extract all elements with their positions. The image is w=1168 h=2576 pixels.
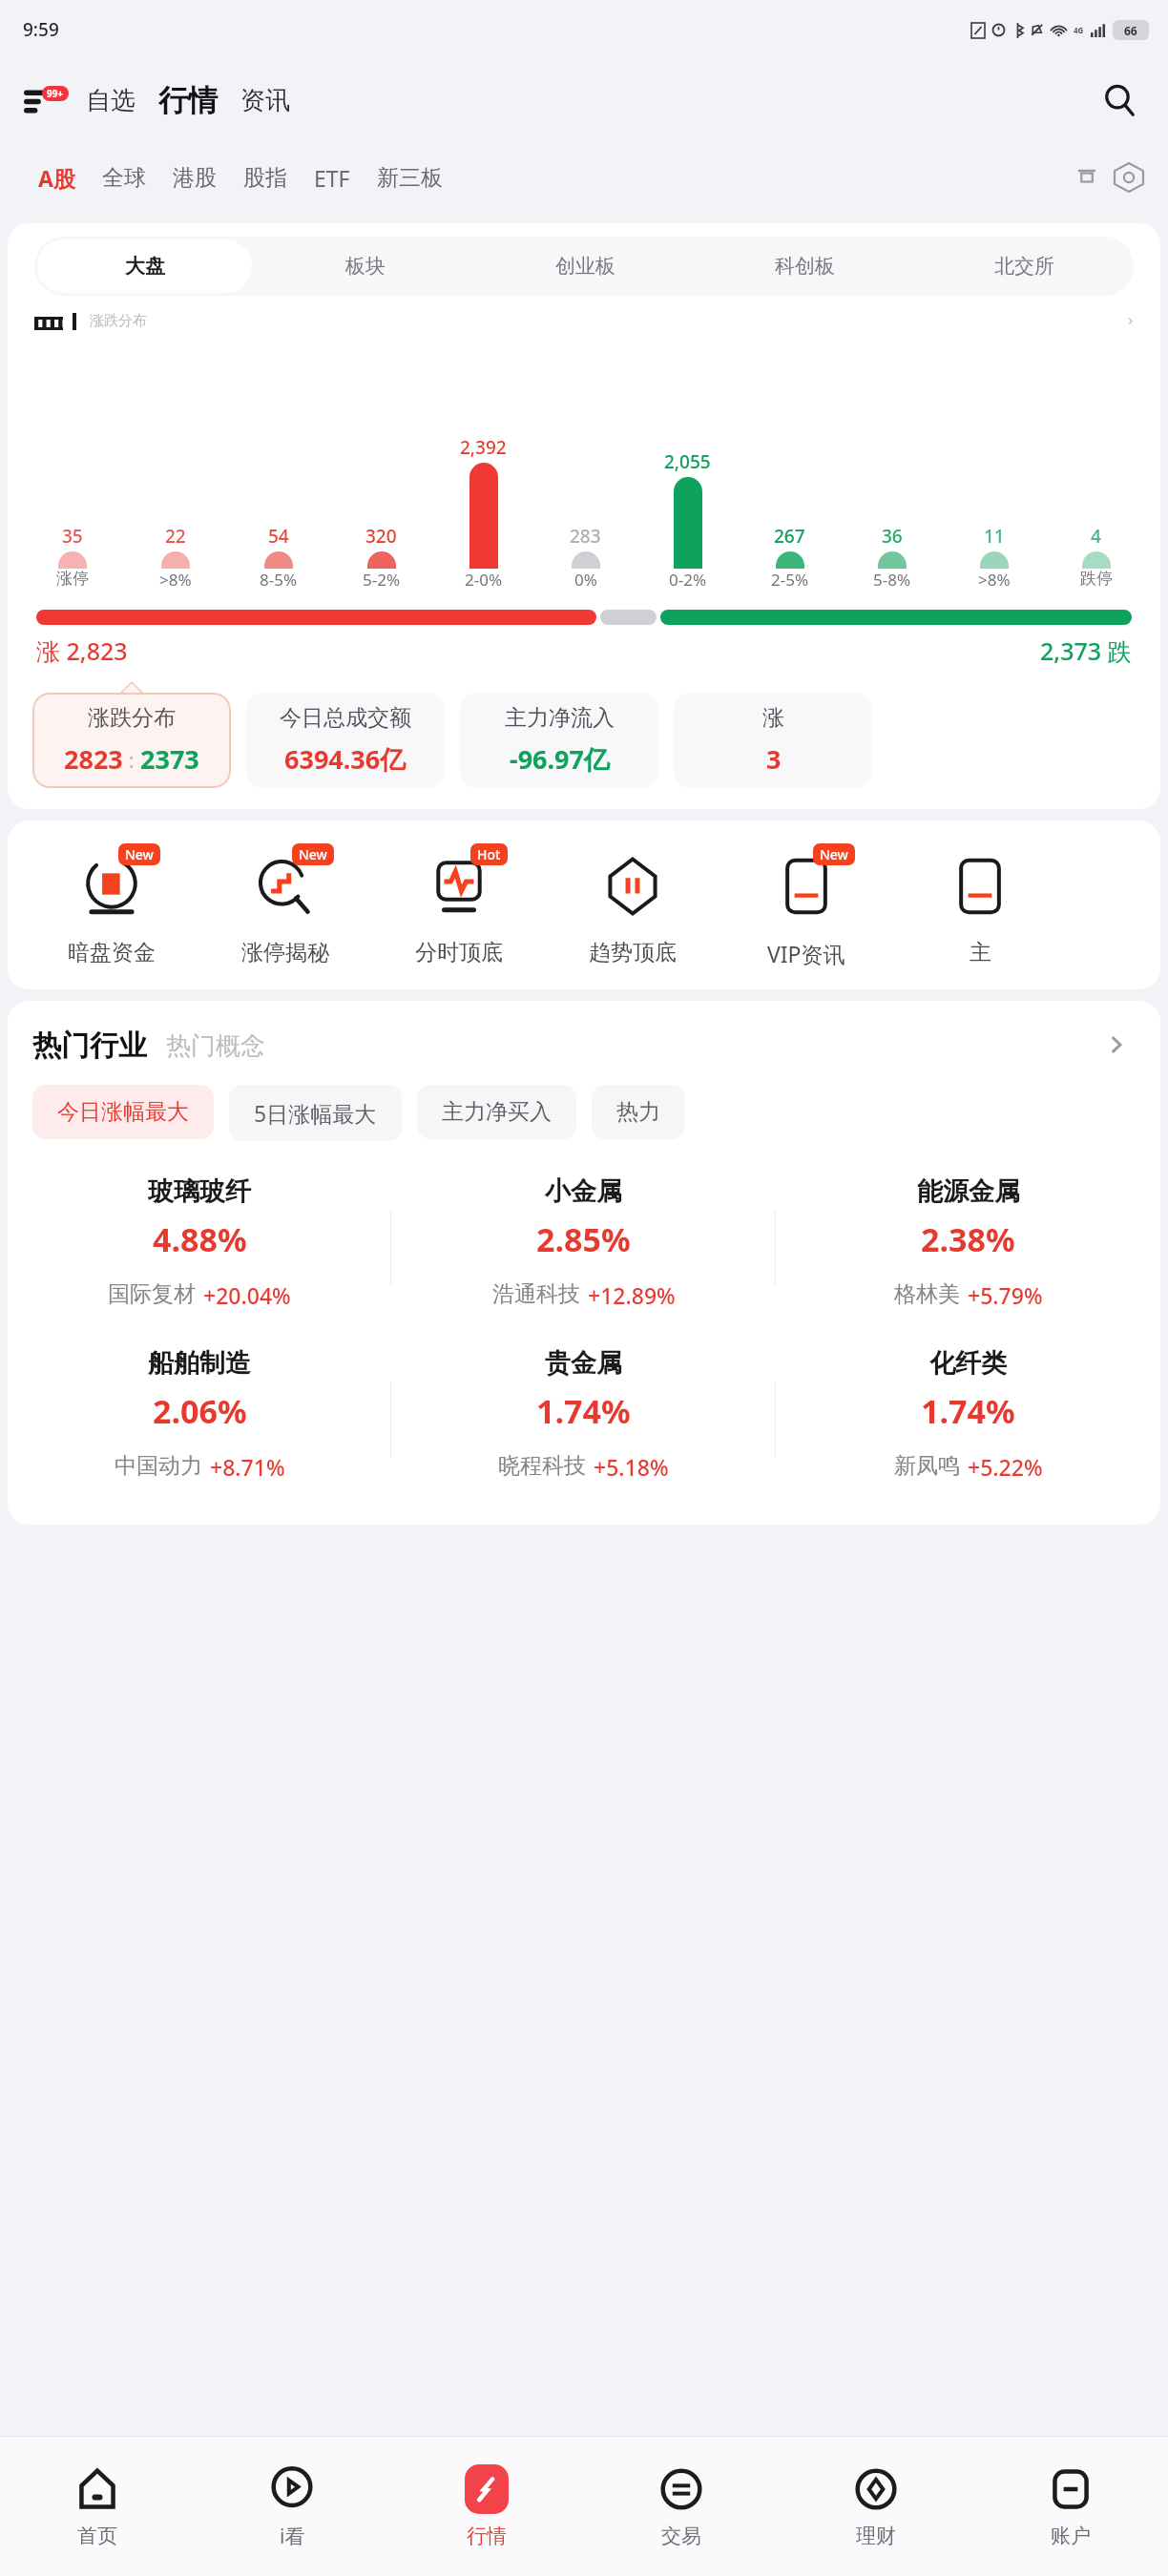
other: Menu — [24, 81, 62, 119]
staticText: 5-2% — [363, 569, 401, 591]
button[interactable]: 股指 — [230, 158, 301, 197]
staticText: i看 — [280, 2523, 305, 2550]
button[interactable]: 全球 — [89, 158, 159, 197]
staticText: › — [1128, 308, 1134, 330]
button[interactable]: Search — [1095, 76, 1143, 124]
staticText: 0% — [574, 569, 597, 591]
staticText: 理财 — [856, 2524, 896, 2548]
staticText: A股 — [38, 163, 75, 193]
staticText: +12.89% — [588, 1280, 676, 1310]
button[interactable]: 大盘 — [37, 239, 252, 293]
button[interactable]: 自选 — [80, 85, 141, 116]
button[interactable]: Menu — [21, 78, 65, 122]
button[interactable]: 主 — [893, 845, 1067, 966]
staticText: VIP资讯 — [767, 939, 845, 968]
staticText: >8% — [159, 569, 192, 591]
staticText: 0-2% — [669, 569, 707, 591]
button[interactable]: 热门行业 — [32, 1028, 147, 1064]
button[interactable]: New — [25, 845, 198, 966]
button[interactable]: 新三板 — [364, 158, 456, 197]
button[interactable]: 首页 — [0, 2437, 195, 2576]
button[interactable]: Hot — [372, 845, 546, 966]
button[interactable]: 热门概念 — [166, 1030, 265, 1064]
button[interactable]: 创业板 — [478, 239, 692, 293]
staticText: 首页 — [77, 2524, 117, 2548]
staticText: 66 — [1124, 23, 1137, 38]
button[interactable]: 账户 — [973, 2437, 1168, 2576]
button[interactable]: i看 — [195, 2437, 389, 2576]
staticText: 267 — [774, 524, 805, 549]
staticText: +5.22% — [968, 1452, 1043, 1482]
button[interactable]: 理财 — [779, 2437, 973, 2576]
button[interactable]: ETF — [301, 157, 364, 198]
staticText: 北交所 — [994, 254, 1054, 279]
staticText: 港股 — [173, 164, 217, 192]
staticText: 今日总成交额 — [280, 704, 411, 732]
staticText: 5-8% — [873, 569, 911, 591]
staticText: Hot — [477, 845, 501, 863]
staticText: 暗盘资金 — [68, 939, 156, 966]
button[interactable]: Sort — [1067, 157, 1107, 197]
button[interactable]: 科创板 — [698, 239, 911, 293]
staticText: 2-5% — [771, 569, 809, 591]
staticText: 2-0% — [465, 569, 503, 591]
button[interactable]: 行情 — [153, 82, 223, 119]
button[interactable]: 主力净买入 — [417, 1085, 576, 1139]
staticText: 2,373 跌 — [1040, 634, 1132, 667]
staticText: 浩通科技 — [492, 1280, 580, 1308]
button[interactable]: 今日涨幅最大 — [32, 1085, 214, 1139]
staticText: 320 — [365, 524, 397, 549]
staticText: 22 — [165, 524, 186, 549]
button[interactable]: A股 — [25, 157, 89, 198]
button[interactable]: 能源金属 — [776, 1162, 1160, 1334]
button[interactable]: 涨 — [674, 693, 872, 788]
staticText: >8% — [978, 569, 1011, 591]
staticText: 涨停揭秘 — [241, 939, 329, 966]
staticText: 行情 — [467, 2524, 507, 2548]
button[interactable]: 化纤类 — [776, 1334, 1160, 1506]
button[interactable]: 玻璃玻纤 — [8, 1162, 391, 1334]
button[interactable]: 小金属 — [391, 1162, 776, 1334]
button[interactable]: More industries — [1097, 1026, 1136, 1064]
staticText: 板块 — [345, 254, 386, 279]
button[interactable]: 涨跌分布 — [32, 693, 231, 788]
button[interactable]: 港股 — [159, 158, 230, 197]
staticText: 涨停 — [56, 569, 89, 589]
button[interactable]: 贵金属 — [391, 1334, 776, 1506]
button[interactable]: 板块 — [258, 239, 472, 293]
staticText: New — [125, 845, 154, 863]
staticText: 船舶制造 — [148, 1347, 251, 1380]
button[interactable]: 船舶制造 — [8, 1334, 391, 1506]
button[interactable]: New — [198, 845, 372, 966]
staticText: 涨跌分布 — [90, 312, 147, 330]
button[interactable]: 热力 — [592, 1085, 685, 1139]
button[interactable]: More — [1107, 156, 1151, 199]
staticText: +5.18% — [594, 1452, 669, 1482]
button[interactable]: New — [720, 845, 893, 968]
button[interactable]: 资讯 — [235, 85, 296, 116]
button[interactable]: 5日涨幅最大 — [229, 1085, 402, 1141]
button[interactable]: 主力净流入 — [460, 693, 658, 788]
staticText: 8-5% — [260, 569, 298, 591]
staticText: 涨跌分布 — [88, 704, 176, 732]
staticText: 中国动力 — [115, 1452, 202, 1480]
button[interactable]: 趋势顶底 — [546, 845, 720, 966]
staticText: 跌停 — [1080, 569, 1113, 589]
staticText: 6394.36亿 — [284, 741, 407, 777]
staticText: 4 — [1091, 524, 1101, 549]
button[interactable]: 今日总成交额 — [246, 693, 445, 788]
staticText: 创业板 — [555, 254, 615, 279]
staticText: 交易 — [661, 2524, 701, 2548]
button[interactable]: 行情 — [389, 2437, 584, 2576]
button[interactable]: 北交所 — [917, 239, 1131, 293]
staticText: 全球 — [102, 164, 146, 192]
staticText: 热门概念 — [166, 1030, 265, 1062]
staticText: 99+ — [47, 87, 64, 100]
button[interactable]: 交易 — [584, 2437, 779, 2576]
staticText: 2.38% — [921, 1217, 1015, 1261]
staticText: 2,392 — [460, 435, 507, 460]
staticText: 账户 — [1051, 2524, 1091, 2548]
staticText: 9:59 — [23, 17, 59, 42]
staticText: +20.04% — [203, 1280, 291, 1310]
staticText: 11 — [984, 524, 1005, 549]
